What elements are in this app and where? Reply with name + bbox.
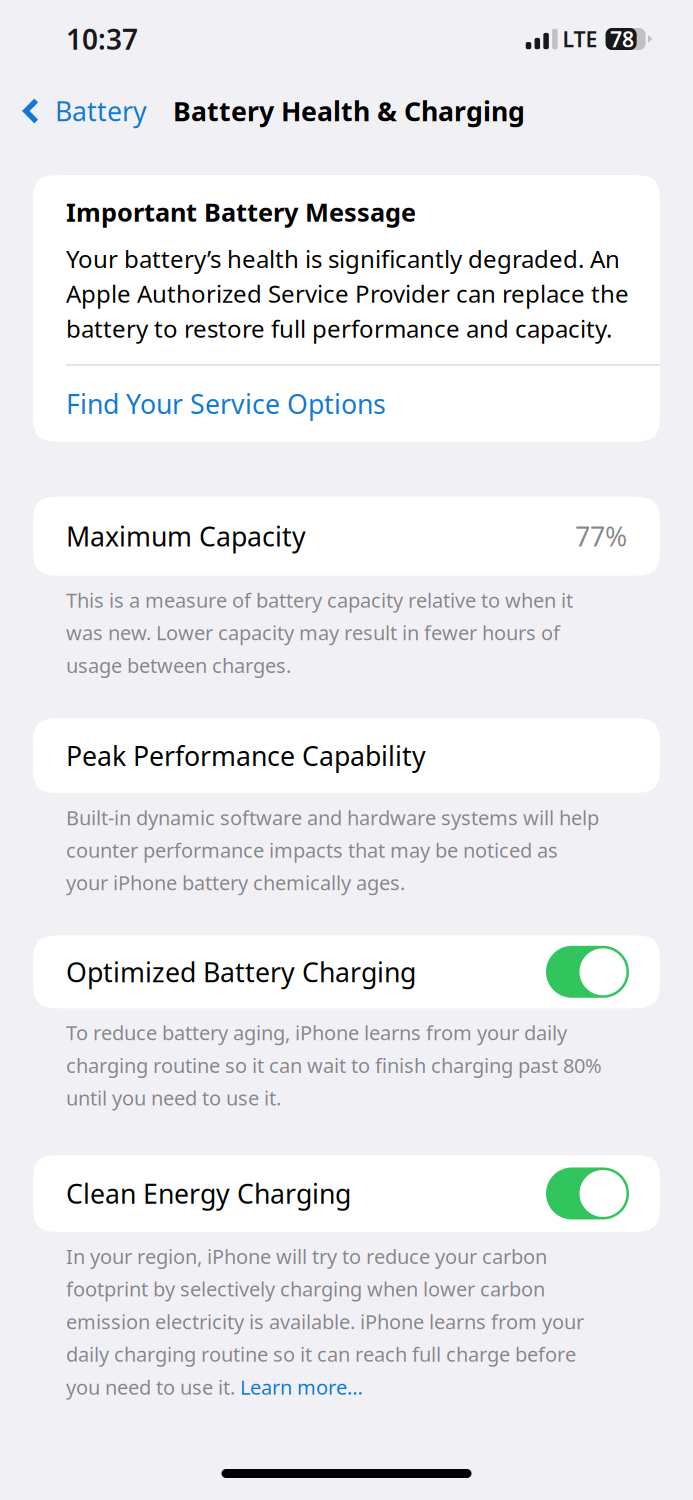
staticText: Your battery’s health is significantly d… [66, 243, 629, 344]
staticText: Important Battery Message [66, 195, 416, 229]
staticText: 10:37 [66, 20, 138, 58]
staticText: 78 [610, 25, 634, 53]
staticText: To reduce battery aging, iPhone learns f… [66, 1019, 602, 1111]
staticText: Battery Health & Charging [173, 93, 525, 129]
button[interactable]: Optimized Battery Charging [33, 935, 660, 1008]
staticText: Peak Performance Capability [66, 738, 426, 773]
staticText: This is a measure of battery capacity re… [66, 587, 573, 678]
staticText: Clean Energy Charging [66, 1176, 351, 1211]
staticText: you need to use it. [66, 1374, 240, 1400]
button[interactable]: Maximum Capacity [33, 497, 660, 576]
staticText: Find Your Service Options [66, 386, 386, 421]
button[interactable]: Battery [0, 78, 161, 144]
staticText: Built-in dynamic software and hardware s… [66, 804, 599, 896]
button[interactable]: Peak Performance Capability [33, 718, 660, 793]
staticText: LTE [563, 25, 598, 53]
staticText: 77% [575, 519, 627, 554]
staticText: Optimized Battery Charging [66, 954, 416, 989]
staticText: Maximum Capacity [66, 519, 306, 554]
button[interactable]: Clean Energy Charging [33, 1155, 660, 1232]
staticText: In your region, iPhone will try to reduc… [66, 1243, 584, 1367]
staticText: Learn more… [240, 1374, 363, 1400]
button[interactable]: Find Your Service Options [33, 366, 660, 442]
staticText: Battery [55, 93, 147, 129]
